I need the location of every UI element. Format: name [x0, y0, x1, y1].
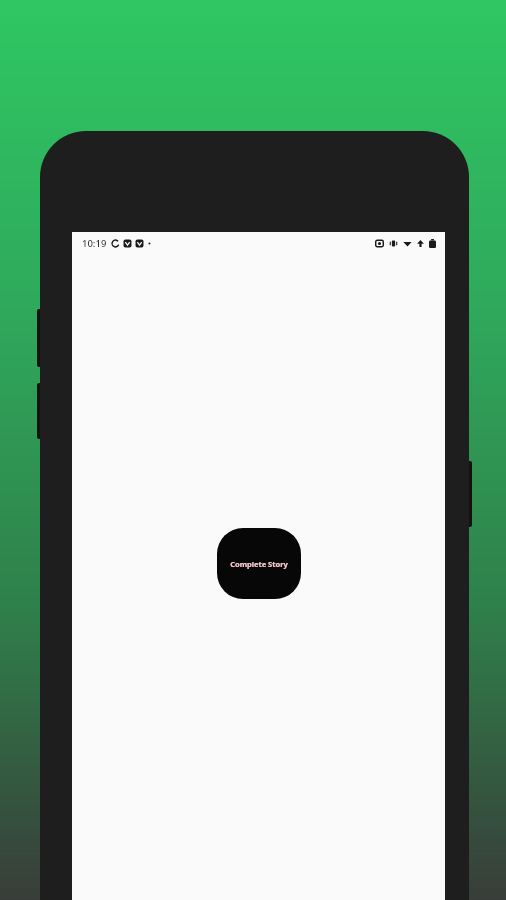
button[interactable]: Complete Story: [217, 528, 301, 599]
staticText: Complete Story: [230, 559, 288, 569]
staticText: 10:19: [82, 237, 107, 250]
